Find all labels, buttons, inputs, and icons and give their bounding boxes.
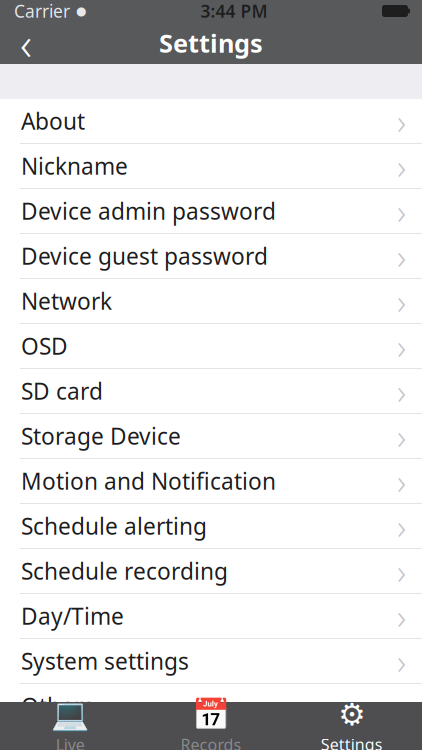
staticText: › [397, 188, 406, 234]
staticText: Nickname [21, 151, 128, 181]
staticText: ⚙ [338, 697, 365, 732]
button[interactable]: Storage Device [0, 414, 422, 459]
staticText: › [397, 503, 406, 549]
staticText: Live [56, 734, 85, 750]
staticText: Network [21, 286, 112, 316]
staticText: › [397, 323, 406, 369]
staticText: › [397, 593, 406, 639]
staticText: Day/Time [21, 601, 124, 631]
button[interactable]: 📅 [141, 702, 281, 750]
staticText: › [397, 548, 406, 594]
button[interactable]: About [0, 99, 422, 144]
staticText: About [21, 106, 85, 136]
staticText: › [397, 413, 406, 459]
button[interactable]: Schedule alerting [0, 504, 422, 549]
staticText: SD card [21, 376, 103, 406]
staticText: ● [76, 4, 86, 18]
staticText: › [397, 233, 406, 279]
staticText: › [397, 98, 406, 144]
staticText: Storage Device [21, 421, 181, 451]
staticText: OSD [21, 331, 68, 361]
staticText: › [397, 638, 406, 684]
staticText: › [397, 278, 406, 324]
staticText: › [397, 143, 406, 189]
staticText: › [397, 368, 406, 414]
button[interactable]: Day/Time [0, 594, 422, 639]
staticText: System settings [21, 646, 189, 676]
staticText: Schedule recording [21, 556, 228, 586]
button[interactable]: Motion and Notification [0, 459, 422, 504]
staticText: 📅 [192, 697, 230, 732]
button[interactable]: Schedule recording [0, 549, 422, 594]
staticText: Others [21, 691, 94, 721]
staticText: Motion and Notification [21, 466, 276, 496]
staticText: Settings [321, 734, 383, 750]
button[interactable]: Device guest password [0, 234, 422, 279]
staticText: › [397, 683, 406, 729]
staticText: Schedule alerting [21, 511, 207, 541]
button[interactable]: Nickname [0, 144, 422, 189]
staticText: Carrier [14, 0, 70, 22]
button[interactable]: SD card [0, 369, 422, 414]
button[interactable]: System settings [0, 639, 422, 684]
staticText: Settings [159, 26, 263, 60]
staticText: Device admin password [21, 196, 276, 226]
staticText: Records [180, 734, 241, 750]
button[interactable]: Device admin password [0, 189, 422, 234]
button[interactable]: OSD [0, 324, 422, 369]
button[interactable]: 💻 [0, 702, 141, 750]
staticText: ‹ [20, 13, 32, 73]
button[interactable]: ⚙ [281, 702, 422, 750]
staticText: 💻 [51, 697, 89, 732]
staticText: › [397, 458, 406, 504]
staticText: Device guest password [21, 241, 268, 271]
button[interactable]: Network [0, 279, 422, 324]
staticText: 3:44 PM [200, 0, 267, 22]
button[interactable]: Others [0, 684, 422, 729]
button[interactable]: Back [6, 22, 46, 64]
